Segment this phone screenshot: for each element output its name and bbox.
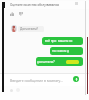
button[interactable]: Home — [16, 88, 20, 92]
button[interactable]: досчитаем? — [36, 57, 83, 66]
button[interactable]: Оцените качество обслуживания — [10, 3, 60, 7]
button[interactable]: всё про вашем со — [42, 37, 83, 45]
staticText: досчитаем? — [37, 60, 55, 64]
staticText: на самом д — [52, 49, 69, 53]
staticText: всё про вашем со — [45, 39, 73, 43]
staticText: Досчитаем? — [20, 27, 38, 31]
button[interactable]: Like — [10, 12, 14, 16]
button[interactable]: Back — [10, 89, 13, 92]
button[interactable]: Send — [73, 76, 79, 82]
button[interactable]: Досчитаем? — [18, 26, 44, 32]
button[interactable]: Dislike — [19, 12, 23, 16]
staticText: Введите сообщение в комнату... — [10, 78, 63, 83]
button[interactable]: Введите сообщение в комнату... — [6, 76, 68, 84]
staticText: Оцените качество обслуживания — [10, 3, 60, 7]
button[interactable]: на самом д — [50, 47, 83, 55]
